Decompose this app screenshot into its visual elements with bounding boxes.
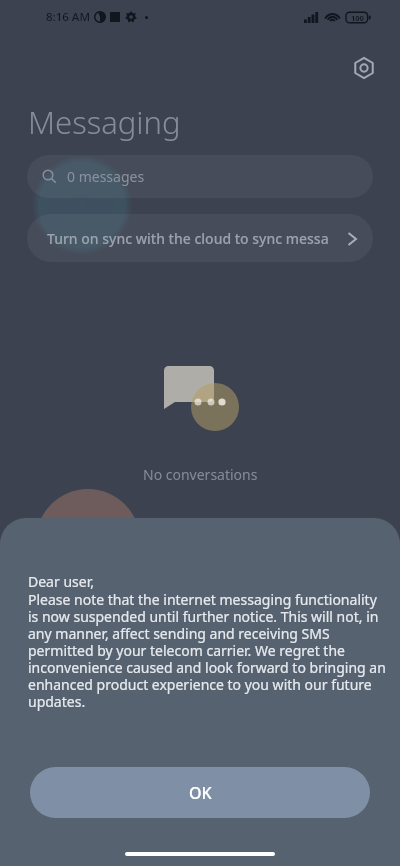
- staticText: 8:16 AM: [46, 9, 90, 25]
- staticText: Messaging: [28, 101, 181, 143]
- staticText: 100: [351, 13, 364, 23]
- staticText: Dear user, Please note that the internet…: [28, 572, 390, 711]
- button[interactable]: OK: [30, 767, 370, 818]
- staticText: OK: [189, 782, 212, 804]
- staticText: No conversations: [143, 465, 258, 484]
- staticText: Turn on sync with the cloud to sync mess…: [47, 229, 329, 248]
- staticText: 0 messages: [67, 167, 145, 186]
- button[interactable]: Settings: [348, 52, 380, 84]
- button[interactable]: Turn on sync with the cloud to sync mess…: [27, 214, 373, 262]
- button[interactable]: 0 messages: [27, 155, 373, 198]
